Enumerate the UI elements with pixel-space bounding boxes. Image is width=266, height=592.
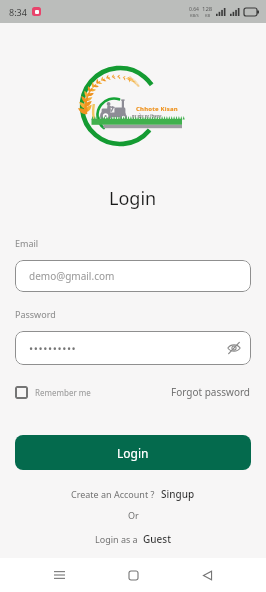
button[interactable]: Remember me	[15, 386, 91, 399]
button[interactable]: Home	[118, 560, 148, 590]
staticText: Singup	[161, 487, 195, 501]
staticText: 8:34	[9, 6, 27, 18]
staticText: Password	[15, 308, 56, 320]
button[interactable]: Login	[15, 435, 251, 470]
button[interactable]: Login as a	[95, 532, 171, 546]
staticText: Email	[15, 237, 39, 249]
staticText: Guest	[143, 532, 171, 546]
staticText: KB	[205, 13, 211, 18]
staticText: Login	[117, 445, 149, 461]
button[interactable]: ••••••••••	[15, 331, 251, 365]
staticText: Or	[128, 509, 139, 521]
staticText: ••••••••••	[29, 341, 77, 356]
staticText: demo@gmail.com	[29, 269, 115, 283]
staticText: 128	[202, 5, 213, 13]
staticText: 0.64	[189, 6, 199, 13]
staticText: Remember me	[35, 387, 91, 398]
staticText: Chhote Kisan	[136, 105, 178, 113]
staticText: हर खेत हर किसान	[132, 113, 162, 119]
button[interactable]: demo@gmail.com	[15, 260, 251, 292]
button[interactable]: Create an Account ?	[71, 487, 195, 501]
staticText: KB/S	[190, 13, 199, 18]
button[interactable]: Show password	[227, 341, 241, 355]
button[interactable]: Forgot password	[171, 385, 251, 399]
staticText: Login as a	[95, 533, 138, 545]
button[interactable]: Back	[192, 560, 222, 590]
button[interactable]: Recent apps	[44, 560, 74, 590]
staticText: Login	[109, 186, 157, 211]
staticText: Create an Account ?	[71, 488, 155, 500]
